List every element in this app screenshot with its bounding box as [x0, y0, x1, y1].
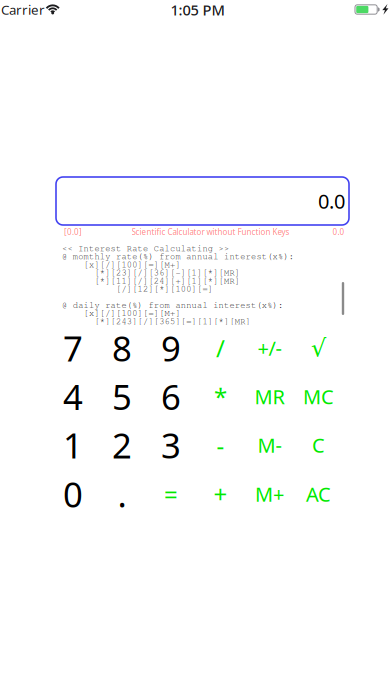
button[interactable]: 2	[97, 421, 146, 469]
button[interactable]: memory clear	[294, 372, 343, 420]
button[interactable]: all clear	[294, 470, 343, 518]
staticText: √	[311, 334, 326, 362]
staticText: MC	[303, 383, 334, 410]
button[interactable]: 6	[146, 372, 195, 420]
staticText: 4	[63, 373, 83, 419]
staticText: -	[216, 429, 224, 461]
button[interactable]: decimal point	[97, 470, 146, 518]
staticText: [*][23][/][36][-][1][*][MR]	[62, 267, 240, 278]
button[interactable]: 7	[48, 324, 97, 372]
button[interactable]: 0	[48, 470, 97, 518]
staticText: +	[213, 478, 227, 510]
button[interactable]: divide	[196, 324, 245, 372]
staticText: [0.0]	[64, 227, 82, 237]
staticText: 9	[161, 325, 181, 371]
staticText: Scientific Calculator without Function K…	[131, 227, 289, 237]
staticText: [*][11][/][24][+][1][*][MR]	[62, 275, 240, 286]
button[interactable]: multiply	[196, 372, 245, 420]
staticText: .	[117, 471, 126, 517]
button[interactable]: memory recall	[245, 372, 294, 420]
staticText: Carrier	[1, 1, 45, 18]
staticText: 5	[112, 373, 132, 419]
staticText: MR	[254, 383, 284, 410]
staticText: @ daily rate(%) from annual interest(x%)…	[62, 300, 283, 310]
staticText: /	[216, 332, 225, 364]
staticText: [x][/][100][=][M+]	[62, 308, 180, 318]
staticText: 1:05 PM	[170, 0, 224, 19]
staticText: M+	[255, 481, 284, 507]
button[interactable]: 5	[97, 372, 146, 420]
staticText: @ momthly rate(%) from annual interest(x…	[62, 251, 294, 261]
staticText: AC	[306, 481, 331, 507]
button[interactable]: square root	[294, 324, 343, 372]
staticText: C	[312, 432, 325, 458]
staticText: [/][12][*][100][=]	[62, 283, 213, 294]
staticText: 8	[112, 325, 132, 371]
button[interactable]: 8	[97, 324, 146, 372]
button[interactable]: equals	[146, 470, 195, 518]
button[interactable]: 4	[48, 372, 97, 420]
button[interactable]: 3	[146, 421, 195, 469]
staticText: +/-	[257, 335, 281, 361]
staticText: 0.0	[332, 227, 344, 237]
staticText: 2	[112, 422, 132, 468]
staticText: 7	[63, 325, 83, 371]
staticText: << Interest Rate Calculating >>	[62, 243, 229, 253]
staticText: *	[214, 381, 227, 412]
button[interactable]: memory subtract	[245, 421, 294, 469]
staticText: =	[164, 478, 178, 510]
staticText: [*][243][/][365][=][1][*][MR]	[62, 316, 251, 326]
staticText: 6	[161, 373, 181, 419]
staticText: [x][/][100][=][M+]	[62, 259, 180, 270]
button[interactable]: 1	[48, 421, 97, 469]
button[interactable]: memory add	[245, 470, 294, 518]
staticText: 1	[63, 422, 83, 468]
staticText: 3	[161, 422, 181, 468]
staticText: 0.0	[318, 188, 345, 214]
button[interactable]: 9	[146, 324, 195, 372]
button[interactable]: minus	[196, 421, 245, 469]
button[interactable]: plus minus	[245, 324, 294, 372]
staticText: 0	[63, 471, 83, 517]
button[interactable]: clear	[294, 421, 343, 469]
staticText: M-	[257, 432, 281, 458]
button[interactable]: plus	[196, 470, 245, 518]
